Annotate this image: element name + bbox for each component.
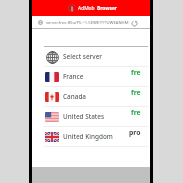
- staticText: fre: [131, 108, 141, 117]
- button[interactable]: United Kingdom: [32, 127, 150, 147]
- staticText: United States: [63, 112, 105, 121]
- button[interactable]: AdMob: [32, 0, 150, 16]
- button[interactable]: Canada: [32, 87, 150, 107]
- button[interactable]: United States: [32, 107, 150, 127]
- staticText: France: [63, 72, 84, 81]
- button[interactable]: Select server: [32, 47, 150, 67]
- staticText: AdMob: [78, 5, 95, 12]
- staticText: pro: [129, 128, 141, 137]
- staticText: Select server: [63, 52, 103, 61]
- staticText: fre: [131, 88, 141, 97]
- staticText: fre: [131, 68, 141, 77]
- button[interactable]: Reload page: [130, 19, 138, 27]
- staticText: Canada: [63, 92, 86, 101]
- staticText: United Kingdom: [63, 132, 113, 141]
- button[interactable]: France: [32, 67, 150, 87]
- staticText: server.free.85u/F5.^1.5EWE????UWEANHM: [46, 20, 129, 26]
- staticText: Browser: [97, 5, 118, 12]
